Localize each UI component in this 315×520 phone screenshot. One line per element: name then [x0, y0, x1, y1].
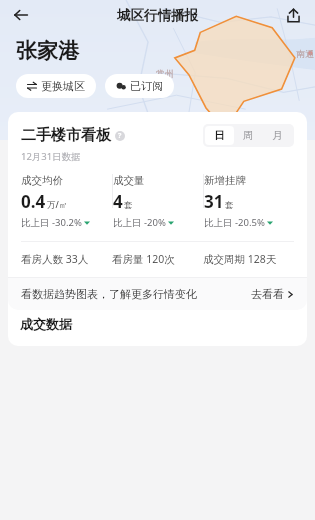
- staticText: 挂牌情况: [118, 220, 162, 234]
- staticText: 已订阅: [130, 79, 163, 93]
- staticText: 成交数据: [20, 316, 72, 332]
- staticText: 城区行情播报: [117, 7, 198, 24]
- staticText: 比上日 -20.5%: [204, 216, 265, 229]
- button[interactable]: 成交情况: [20, 215, 94, 239]
- staticText: 成交均价: [21, 174, 63, 187]
- staticText: 近1年成交量: [176, 277, 232, 291]
- staticText: 看房量 120次: [112, 252, 203, 266]
- staticText: 常州: [156, 68, 174, 79]
- button[interactable]: Share: [279, 1, 307, 29]
- staticText: 0.4: [21, 190, 46, 213]
- staticText: 比上日 -30.2%: [21, 216, 82, 229]
- staticText: ?: [118, 131, 122, 141]
- staticText: 比上日 -20%: [113, 216, 166, 229]
- staticText: 套: [225, 200, 234, 211]
- button[interactable]: 看数据趋势图表，了解更多行情变化: [8, 278, 307, 310]
- button[interactable]: Back: [6, 0, 36, 30]
- staticText: 4: [113, 190, 123, 213]
- staticText: 看数据趋势图表，了解更多行情变化: [21, 287, 197, 301]
- staticText: 近1年成交均价: [20, 277, 86, 291]
- staticText: 0.84: [20, 252, 54, 275]
- button[interactable]: 价格走势: [16, 152, 80, 168]
- staticText: 1861: [176, 252, 215, 275]
- button[interactable]: 更换城区: [16, 74, 96, 98]
- staticText: 周: [243, 129, 254, 142]
- staticText: 看房人数 33人: [21, 252, 112, 266]
- staticText: 万/㎡: [47, 199, 68, 211]
- button[interactable]: 挂牌情况: [103, 215, 177, 239]
- staticText: 张家港: [16, 38, 79, 64]
- staticText: 日: [214, 129, 225, 142]
- staticText: 更换城区: [41, 79, 85, 93]
- staticText: 新增挂牌: [204, 174, 246, 187]
- staticText: 套: [124, 200, 133, 211]
- staticText: 成交情况: [35, 220, 79, 234]
- staticText: 12月31日数据: [21, 150, 81, 163]
- button[interactable]: 周: [234, 126, 263, 145]
- button[interactable]: 已订阅: [105, 74, 174, 98]
- staticText: 成交量: [113, 174, 145, 187]
- staticText: 套: [215, 262, 224, 273]
- staticText: 二手楼市看板: [21, 126, 111, 145]
- button[interactable]: Info: [115, 131, 125, 141]
- staticText: 31: [204, 190, 224, 213]
- staticText: 南通: [296, 48, 314, 59]
- staticText: 成交周期 128天: [203, 252, 294, 266]
- staticText: 价格走势: [16, 152, 68, 168]
- button[interactable]: 日: [205, 126, 234, 145]
- staticText: 去看看: [251, 287, 284, 301]
- staticText: 万/㎡: [54, 261, 75, 273]
- staticText: 月: [272, 129, 283, 142]
- staticText: 城区价格走势: [29, 186, 113, 204]
- button[interactable]: 月: [263, 126, 292, 145]
